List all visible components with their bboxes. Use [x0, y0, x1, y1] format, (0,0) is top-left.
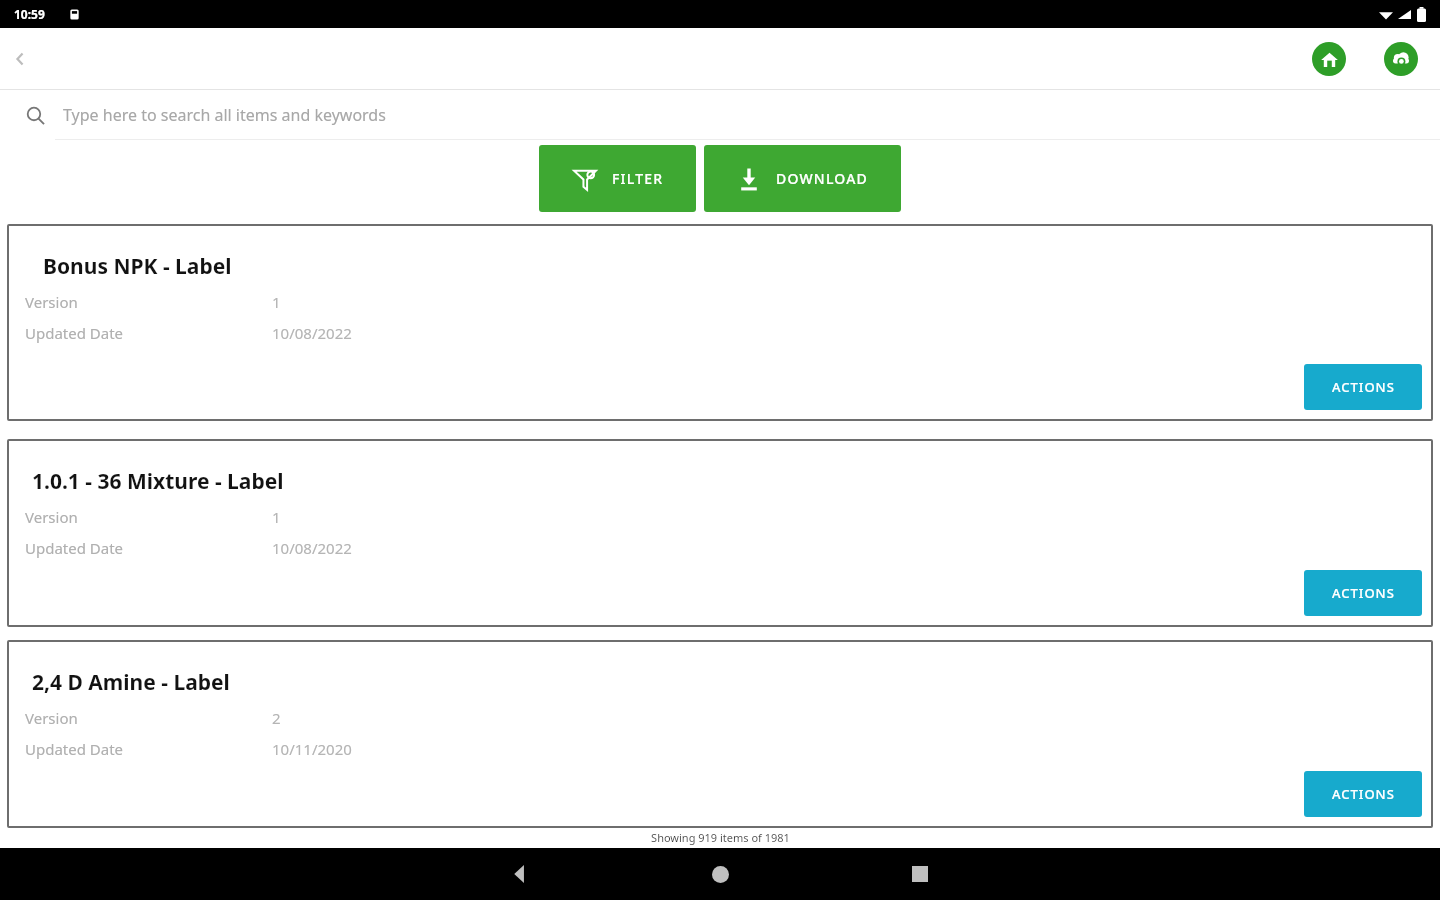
staticText: Type here to search all items and keywor… [63, 104, 386, 126]
button[interactable]: ACTIONS [1304, 570, 1422, 616]
staticText: Bonus NPK - Label [43, 252, 232, 281]
button[interactable]: Recent apps [900, 854, 940, 894]
staticText: 10/11/2020 [272, 739, 352, 759]
staticText: 1.0.1 - 36 Mixture - Label [32, 467, 284, 496]
staticText: Showing 919 items of 1981 [651, 830, 790, 845]
button[interactable]: Back [500, 854, 540, 894]
button[interactable]: Home [700, 854, 740, 894]
button[interactable]: 1.0.1 - 36 Mixture - Label [7, 439, 1433, 627]
staticText: FILTER [612, 169, 664, 188]
button[interactable]: Sync [1384, 42, 1418, 76]
staticText: 2 [272, 708, 281, 728]
staticText: 2,4 D Amine - Label [32, 668, 230, 697]
staticText: DOWNLOAD [776, 169, 869, 188]
staticText: ACTIONS [1332, 584, 1395, 602]
button[interactable]: FILTER [539, 145, 696, 212]
staticText: Updated Date [25, 323, 272, 343]
staticText: 1 [272, 507, 281, 527]
button[interactable]: Home [1312, 42, 1346, 76]
staticText: ACTIONS [1332, 785, 1395, 803]
staticText: Version [25, 507, 272, 527]
staticText: Updated Date [25, 739, 272, 759]
staticText: ACTIONS [1332, 378, 1395, 396]
button[interactable]: Back [0, 39, 40, 79]
staticText: Version [25, 292, 272, 312]
staticText: 10/08/2022 [272, 538, 352, 558]
button[interactable]: 2,4 D Amine - Label [7, 640, 1433, 828]
staticText: 1 [272, 292, 281, 312]
staticText: 10:59 [14, 6, 45, 22]
button[interactable]: Bonus NPK - Label [7, 224, 1433, 421]
staticText: Updated Date [25, 538, 272, 558]
button[interactable]: DOWNLOAD [704, 145, 901, 212]
button[interactable]: ACTIONS [1304, 364, 1422, 410]
button[interactable]: ACTIONS [1304, 771, 1422, 817]
staticText: 10/08/2022 [272, 323, 352, 343]
staticText: Version [25, 708, 272, 728]
